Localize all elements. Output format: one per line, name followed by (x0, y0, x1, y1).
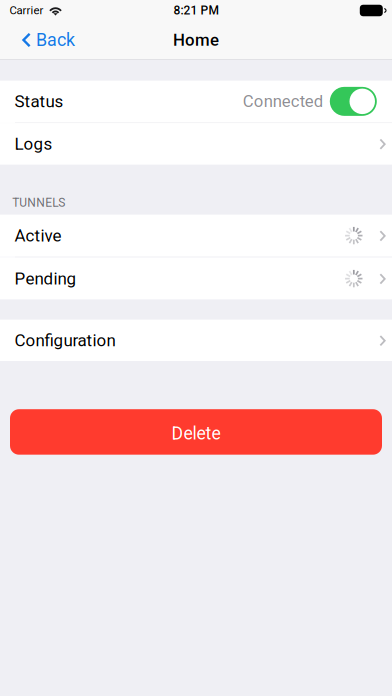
button[interactable]: Pending (0, 258, 392, 300)
staticText: Connected (243, 92, 323, 111)
staticText: Pending (14, 269, 76, 288)
staticText: Delete (171, 423, 220, 444)
button[interactable]: Status (0, 81, 392, 122)
staticText: Configuration (14, 330, 115, 350)
staticText: 8:21 PM (173, 3, 218, 18)
staticText: Status (14, 91, 63, 111)
button[interactable]: Delete (10, 409, 382, 455)
button[interactable]: Logs (0, 123, 392, 165)
button[interactable]: Configuration (0, 320, 392, 361)
staticText: Active (14, 226, 61, 245)
button[interactable]: Back (0, 21, 85, 59)
button[interactable]: Active (0, 215, 392, 257)
staticText: Carrier (9, 4, 43, 17)
staticText: Back (36, 29, 75, 50)
staticText: Logs (14, 134, 52, 154)
staticText: TUNNELS (12, 196, 65, 210)
staticText: Home (173, 30, 219, 50)
